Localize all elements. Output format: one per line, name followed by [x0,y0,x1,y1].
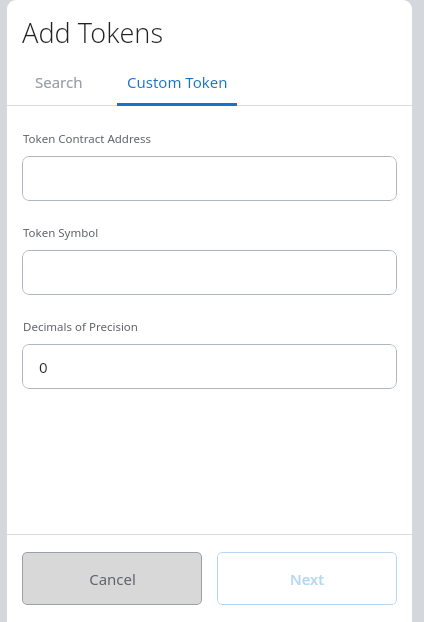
button[interactable]: Next [217,552,397,605]
button[interactable]: Custom Token [123,68,232,96]
staticText: Next [290,569,324,589]
button[interactable]: Text input field [22,156,397,201]
staticText: Add Tokens [22,14,164,51]
staticText: 0 [39,357,48,377]
staticText: Custom Token [127,72,228,92]
button[interactable]: Cancel [22,552,202,605]
staticText: Token Contract Address [23,131,151,147]
button[interactable]: Text input field [22,344,397,389]
staticText: Token Symbol [23,225,99,241]
staticText: Decimals of Precision [23,319,138,335]
staticText: Search [35,72,83,92]
button[interactable]: Search [31,68,87,96]
button[interactable]: Text input field [22,250,397,295]
staticText: Cancel [89,569,136,589]
